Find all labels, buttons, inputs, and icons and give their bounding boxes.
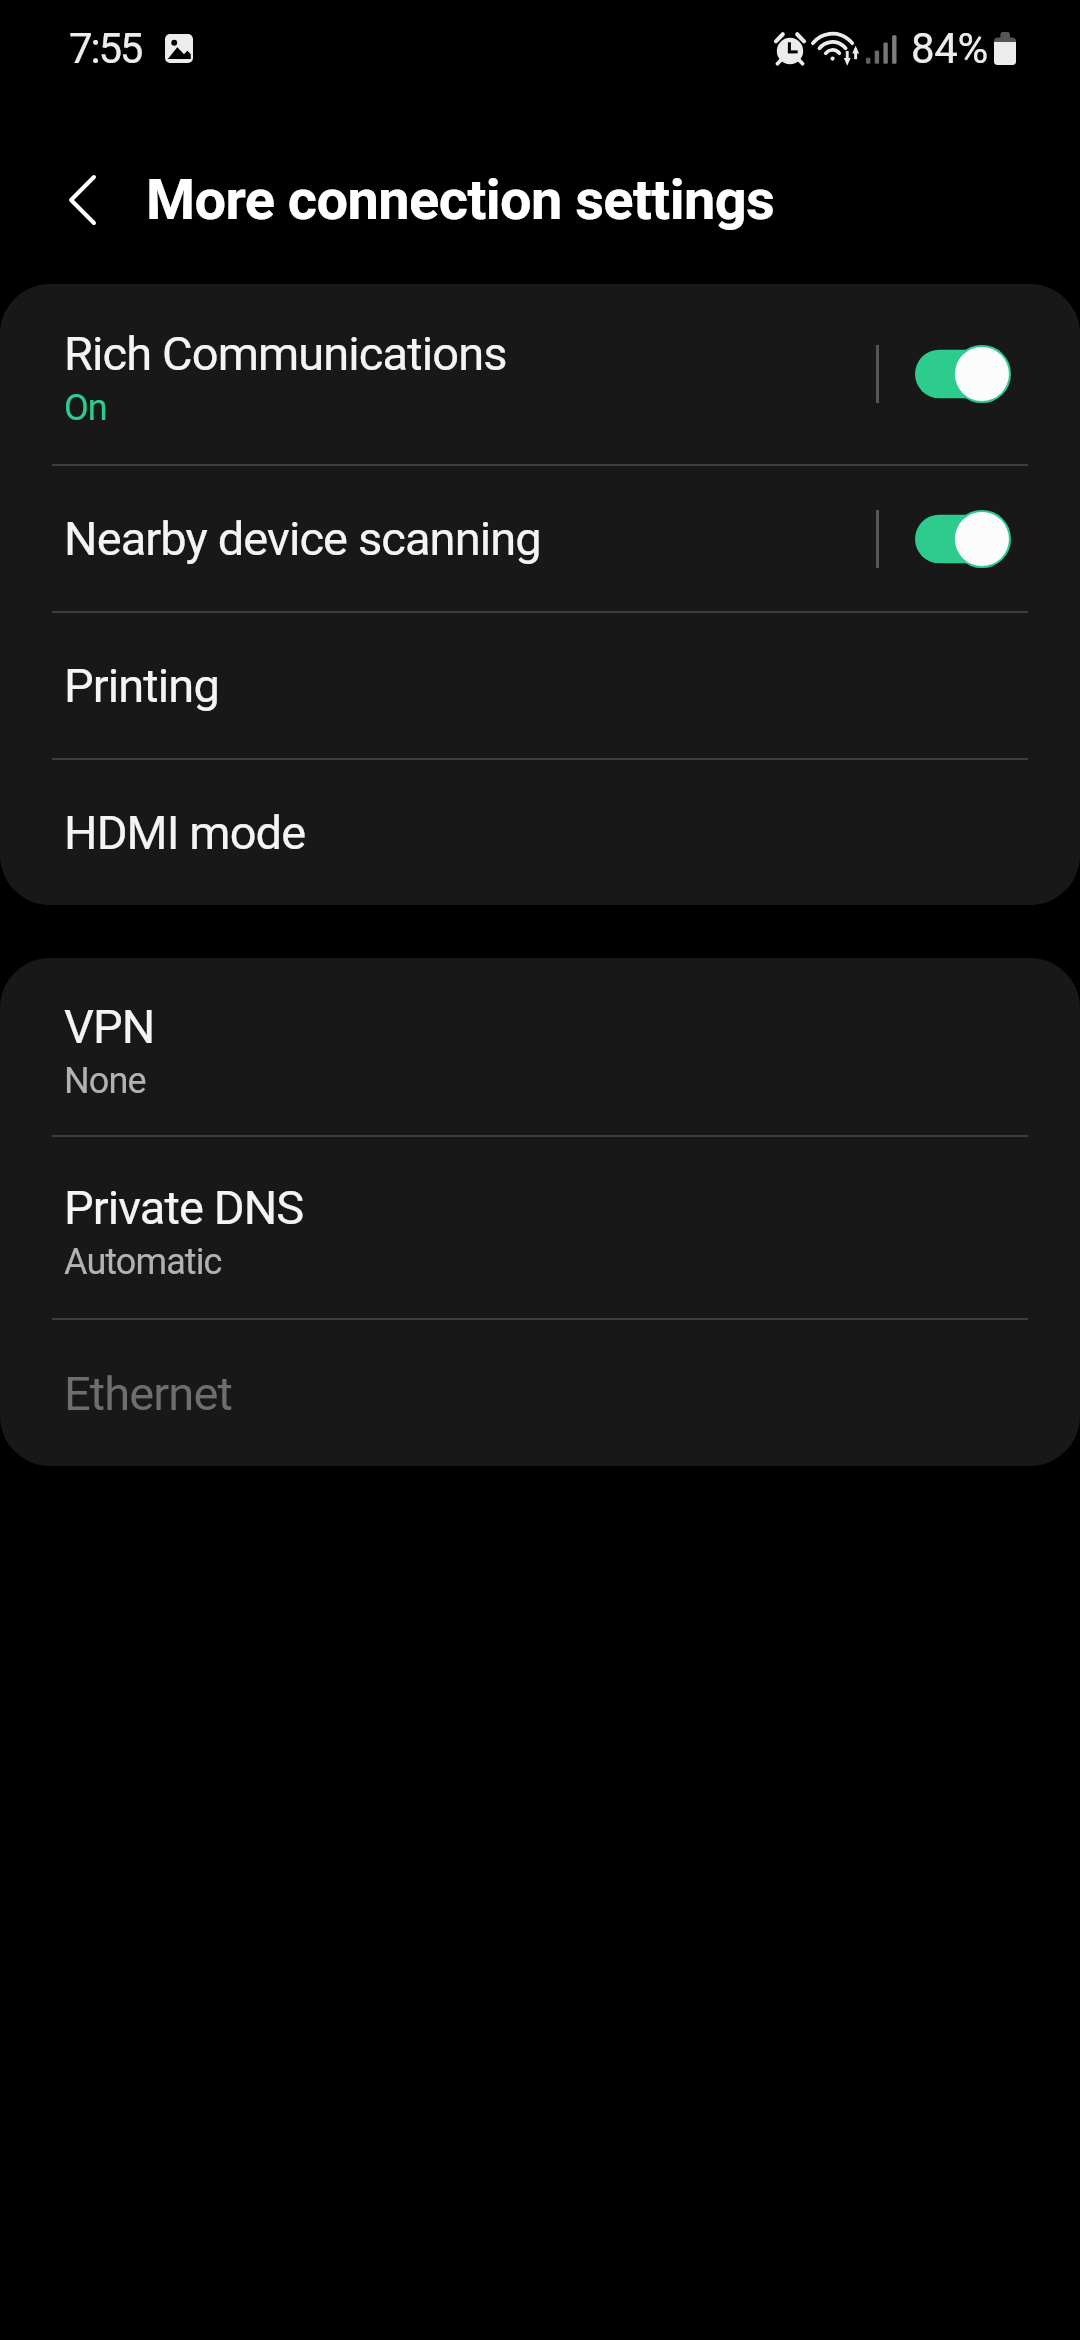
button[interactable]: Nearby device scanning bbox=[0, 466, 1080, 611]
staticText: HDMI mode bbox=[64, 805, 306, 860]
staticText: 7:55 bbox=[69, 24, 142, 73]
staticText: None bbox=[64, 1060, 146, 1102]
button[interactable]: Ethernet bbox=[0, 1320, 1080, 1466]
staticText: Private DNS bbox=[64, 1180, 304, 1235]
staticText: Nearby device scanning bbox=[64, 511, 541, 566]
staticText: More connection settings bbox=[146, 167, 775, 233]
button[interactable]: On bbox=[915, 344, 1011, 404]
button[interactable]: Rich Communications bbox=[0, 284, 1080, 464]
button[interactable]: VPN bbox=[0, 958, 1080, 1135]
button[interactable]: On bbox=[915, 509, 1011, 569]
button[interactable]: Private DNS bbox=[0, 1137, 1080, 1318]
staticText: Rich Communications bbox=[64, 326, 507, 381]
staticText: On bbox=[64, 387, 107, 429]
button[interactable]: HDMI mode bbox=[0, 760, 1080, 905]
staticText: Ethernet bbox=[64, 1366, 232, 1421]
staticText: 84% bbox=[911, 24, 988, 73]
button[interactable]: Navigate up bbox=[46, 164, 118, 236]
staticText: VPN bbox=[64, 999, 155, 1054]
staticText: Automatic bbox=[64, 1241, 222, 1283]
button[interactable]: Printing bbox=[0, 613, 1080, 758]
staticText: Printing bbox=[64, 658, 219, 713]
